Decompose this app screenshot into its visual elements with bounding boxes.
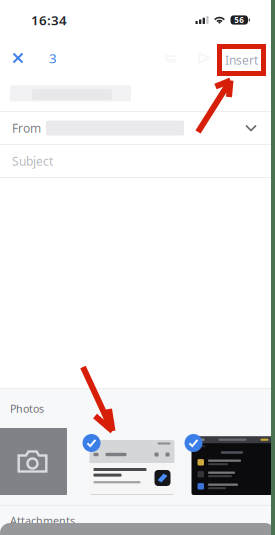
staticText: 3 [49, 49, 57, 67]
staticText: From [12, 120, 41, 136]
button[interactable]: Recipients [46, 45, 60, 71]
staticText: Attachments [10, 513, 75, 528]
staticText: Insert [225, 52, 258, 68]
staticText: Photos [10, 401, 44, 416]
staticText: 56 [234, 15, 244, 25]
button[interactable]: Screenshot 2, selected [181, 428, 269, 495]
button[interactable]: Screenshot 1, selected [79, 428, 171, 495]
staticText: Subject [12, 153, 53, 169]
staticText: 16:34 [31, 11, 67, 29]
button[interactable]: Insert [220, 42, 269, 74]
button[interactable]: Take Photo [0, 428, 67, 495]
button[interactable]: Close [8, 45, 28, 71]
